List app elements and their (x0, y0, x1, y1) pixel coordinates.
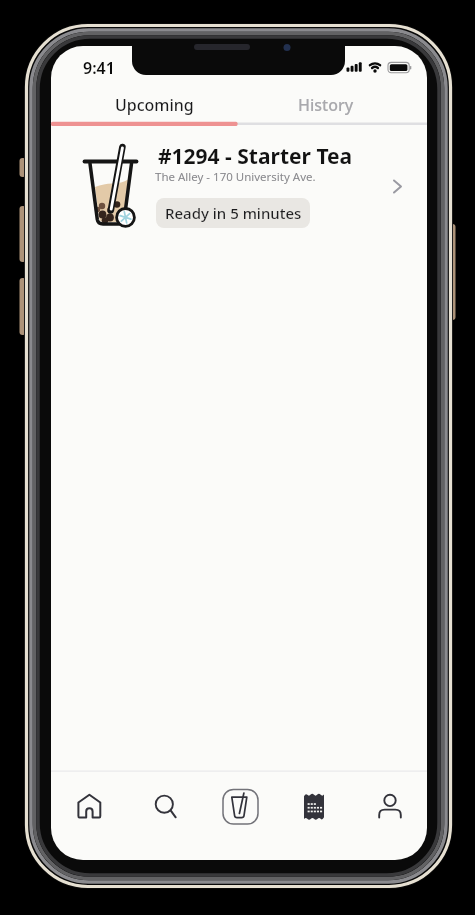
staticText: Ready in 5 minutes (165, 203, 302, 223)
staticText: 9:41 (83, 57, 115, 79)
staticText: #1294 - Starter Tea (158, 142, 353, 171)
button[interactable] (277, 772, 352, 860)
staticText: The Alley - 170 University Ave. (155, 169, 316, 185)
button[interactable] (352, 772, 427, 860)
staticText: Upcoming (115, 94, 194, 116)
button[interactable] (51, 772, 127, 860)
button[interactable] (127, 772, 202, 860)
button[interactable] (202, 772, 277, 860)
button[interactable]: #1294 - Starter Tea (51, 140, 427, 240)
button[interactable]: Upcoming (60, 89, 248, 121)
staticText: History (298, 94, 354, 116)
button[interactable]: History (232, 89, 420, 121)
